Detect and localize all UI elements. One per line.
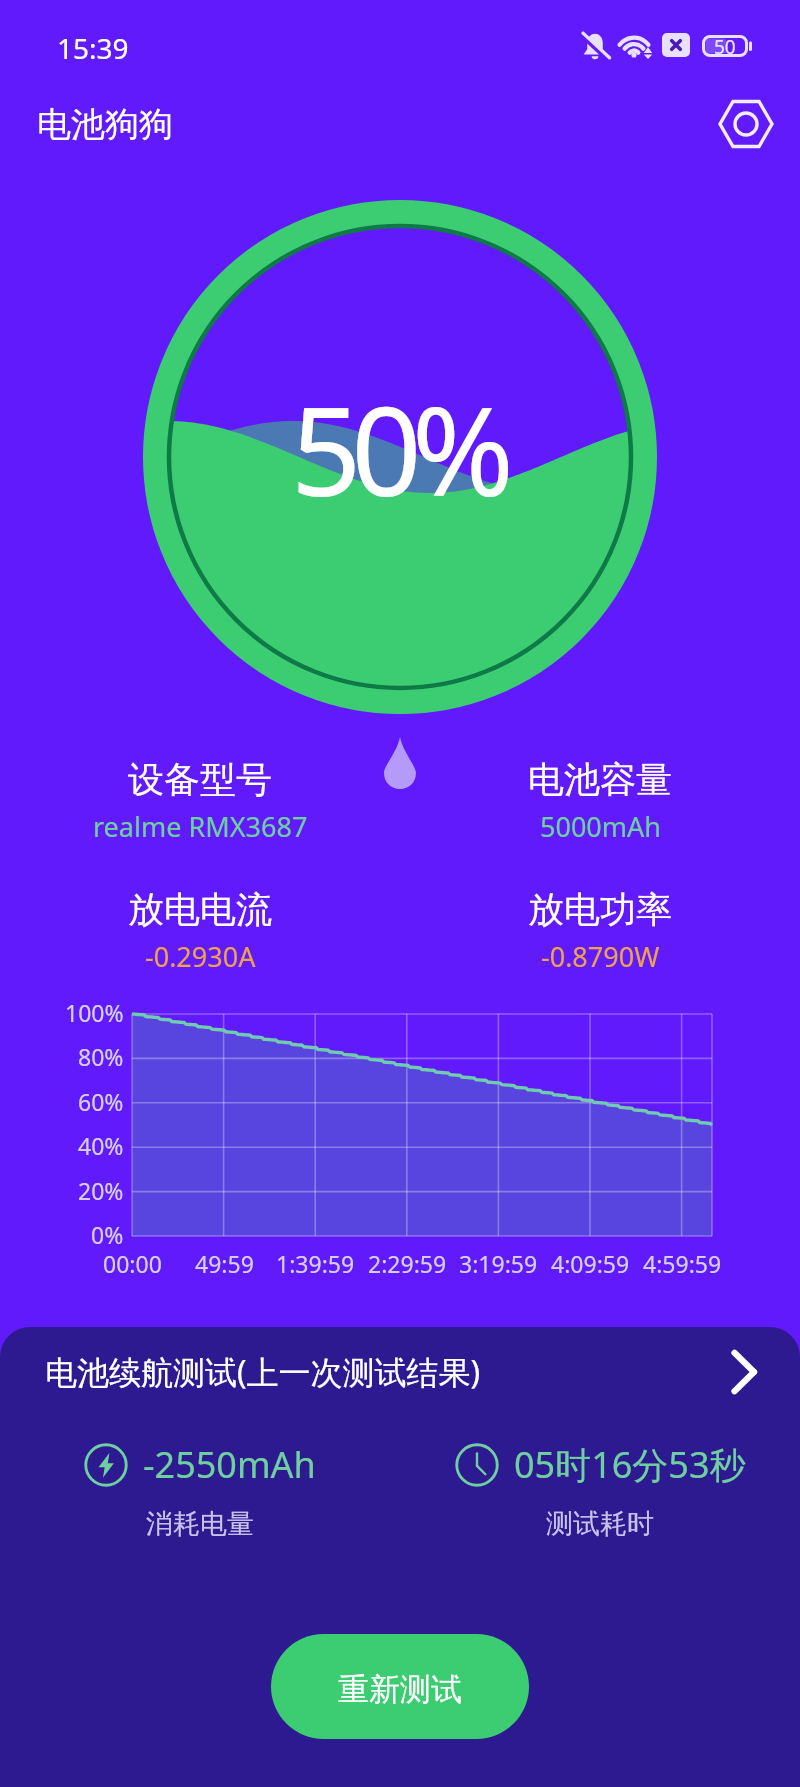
staticText: 放电电流: [128, 887, 272, 932]
staticText: 0%: [91, 1219, 124, 1250]
staticText: 电池容量: [528, 757, 672, 802]
staticText: -0.8790W: [541, 938, 660, 975]
staticText: realme RMX3687: [93, 808, 308, 845]
staticText: 50%: [291, 365, 504, 533]
staticText: 放电功率: [528, 887, 672, 932]
staticText: 4:59:59: [643, 1248, 722, 1279]
staticText: 4:09:59: [551, 1248, 630, 1279]
staticText: -2550mAh: [143, 1440, 316, 1489]
staticText: 消耗电量: [146, 1507, 254, 1541]
staticText: 80%: [78, 1041, 124, 1072]
staticText: 2:29:59: [368, 1248, 447, 1279]
staticText: 15:39: [57, 29, 129, 67]
staticText: 电池续航测试(上一次测试结果): [45, 1350, 481, 1394]
staticText: 电池狗狗: [37, 103, 173, 146]
staticText: 1:39:59: [276, 1248, 355, 1279]
button[interactable]: 电池续航测试(上一次测试结果): [0, 1339, 800, 1405]
staticText: 50: [714, 34, 736, 56]
button[interactable]: 重新测试: [271, 1634, 529, 1739]
staticText: 5000mAh: [540, 808, 661, 845]
staticText: 设备型号: [128, 757, 272, 802]
staticText: 60%: [78, 1086, 124, 1117]
staticText: -0.2930A: [145, 938, 256, 975]
staticText: 测试耗时: [546, 1507, 654, 1541]
staticText: 00:00: [103, 1248, 162, 1279]
staticText: 49:59: [195, 1248, 254, 1279]
staticText: 3:19:59: [459, 1248, 538, 1279]
staticText: 100%: [65, 997, 124, 1028]
button[interactable]: Settings: [710, 88, 782, 160]
staticText: 重新测试: [338, 1670, 462, 1709]
staticText: 05时16分53秒: [514, 1440, 746, 1489]
staticText: 40%: [78, 1130, 124, 1161]
staticText: 20%: [78, 1175, 124, 1206]
